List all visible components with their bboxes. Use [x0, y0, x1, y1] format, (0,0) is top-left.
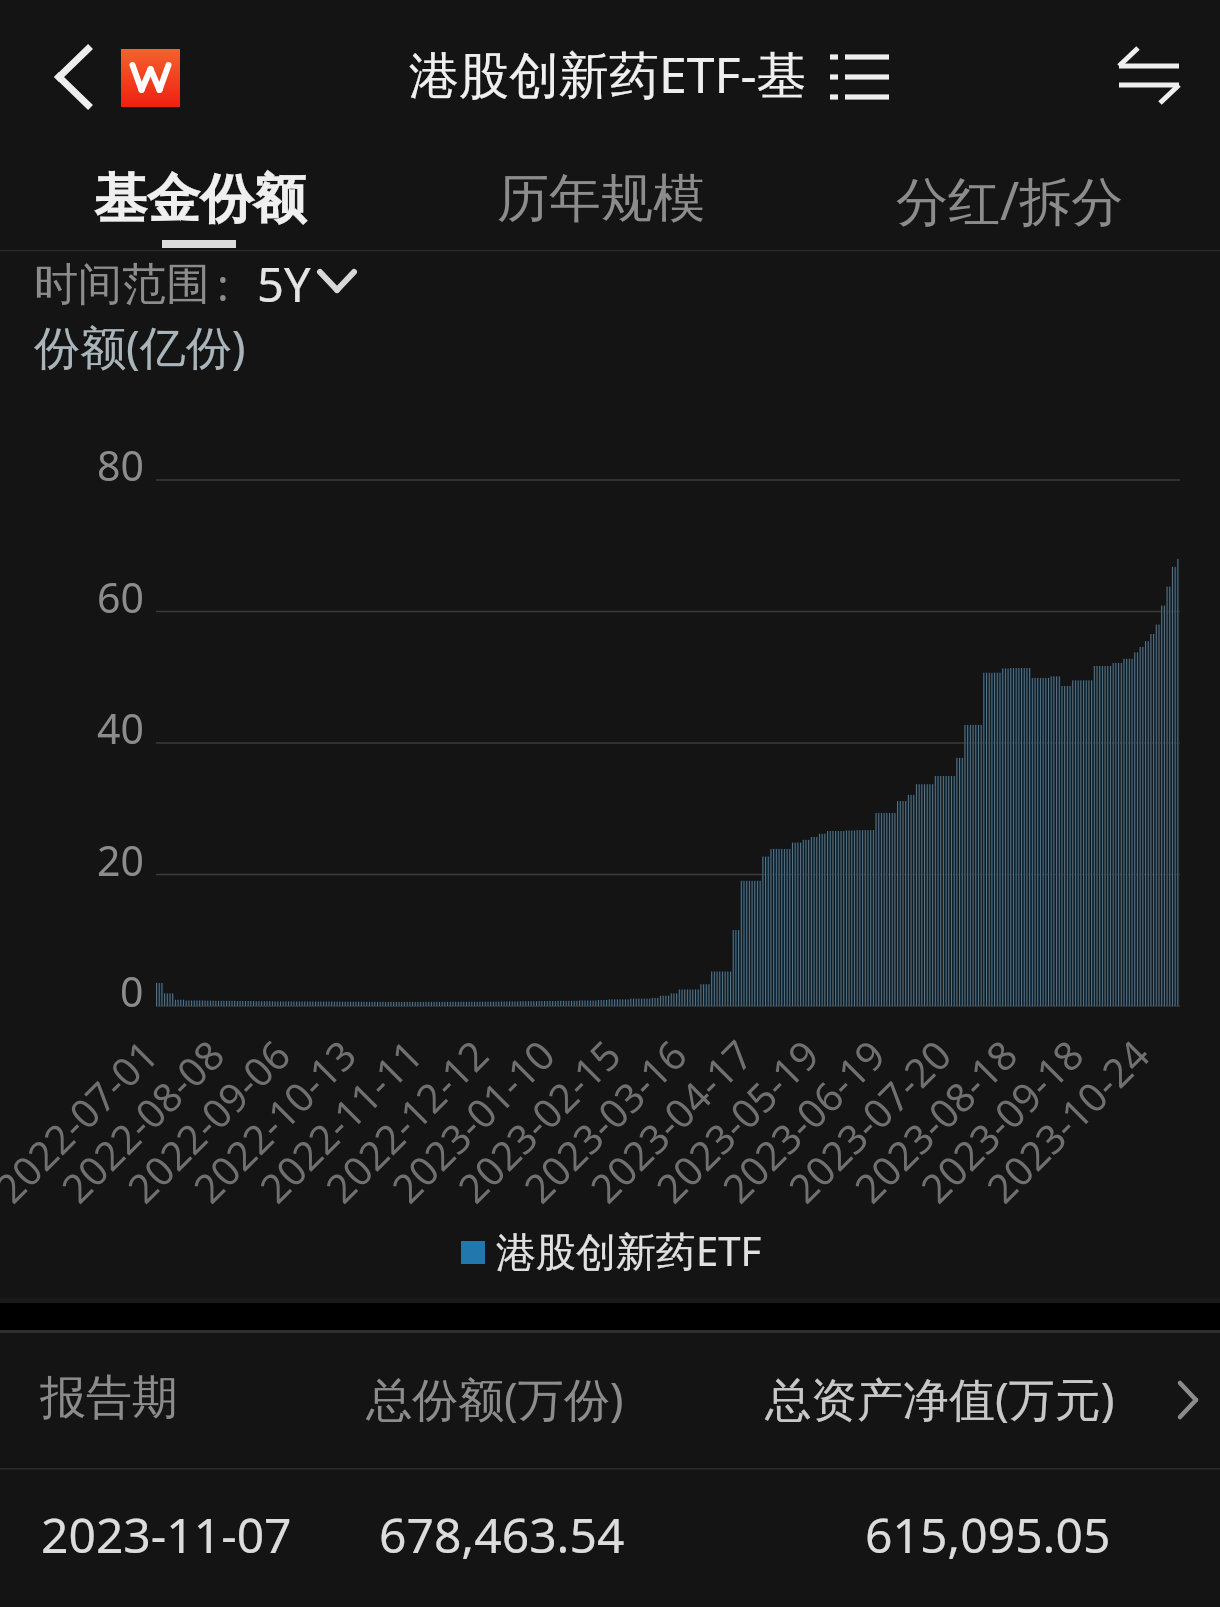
button[interactable]: 2023-11-07 678,463.54 615,095.05 — [0, 1470, 1220, 1607]
button[interactable]: 分红/拆分 — [804, 152, 1220, 250]
button[interactable]: 港股创新药ETF-基 — [396, 34, 896, 122]
button[interactable]: 时间范围: 5Y — [26, 254, 360, 316]
button[interactable]: Compare funds — [1098, 32, 1198, 124]
button[interactable]: 历年规模 — [400, 152, 804, 250]
button[interactable]: Wind app home — [112, 38, 188, 116]
button[interactable]: 港股创新药ETF — [452, 1230, 772, 1276]
button[interactable]: Back — [28, 38, 92, 116]
button[interactable]: 基金份额 — [0, 152, 400, 250]
button[interactable]: 报告期 总份额(万份) 总资产净值(万元) — [0, 1333, 1220, 1468]
